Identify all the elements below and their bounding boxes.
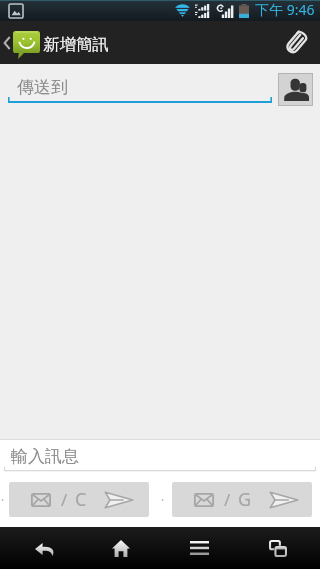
- staticText: /: [61, 488, 68, 511]
- staticText: 傳送到: [17, 77, 68, 98]
- button[interactable]: 新增簡訊: [0, 21, 109, 64]
- button[interactable]: [8, 97, 272, 104]
- button[interactable]: Attach: [272, 21, 320, 64]
- staticText: 新增簡訊: [43, 34, 109, 55]
- button[interactable]: 輸入訊息: [0, 440, 320, 471]
- button[interactable]: Home: [80, 527, 160, 569]
- staticText: G: [238, 487, 252, 512]
- button[interactable]: /: [172, 482, 312, 517]
- staticText: 輸入訊息: [11, 446, 79, 467]
- button[interactable]: Recents: [240, 527, 320, 569]
- button[interactable]: /: [9, 482, 149, 517]
- button[interactable]: Menu: [160, 527, 240, 569]
- button[interactable]: Back: [0, 527, 80, 569]
- staticText: /: [224, 488, 231, 511]
- staticText: C: [75, 487, 87, 512]
- staticText: 下午 9:46: [255, 0, 315, 19]
- button[interactable]: Pick contact: [278, 73, 313, 106]
